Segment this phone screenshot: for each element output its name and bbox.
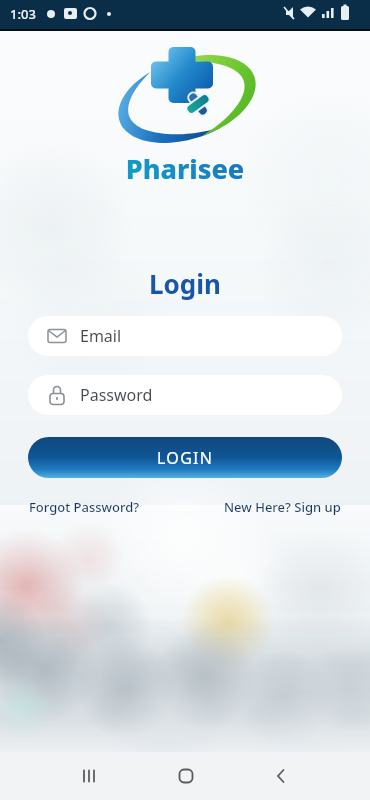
button[interactable]: Forgot Password?: [29, 498, 140, 516]
button[interactable]: [267, 762, 295, 790]
staticText: LOGIN: [157, 447, 214, 469]
staticText: 1:03: [10, 5, 36, 23]
button[interactable]: Password: [28, 375, 342, 415]
staticText: Login: [0, 266, 370, 301]
button[interactable]: [172, 762, 200, 790]
staticText: Password: [80, 384, 153, 406]
button[interactable]: New Here? Sign up: [224, 498, 341, 516]
staticText: Email: [80, 325, 122, 347]
button[interactable]: LOGIN: [28, 437, 342, 478]
staticText: Pharisee: [0, 150, 370, 187]
button[interactable]: [76, 762, 104, 790]
button[interactable]: Email: [28, 316, 342, 356]
